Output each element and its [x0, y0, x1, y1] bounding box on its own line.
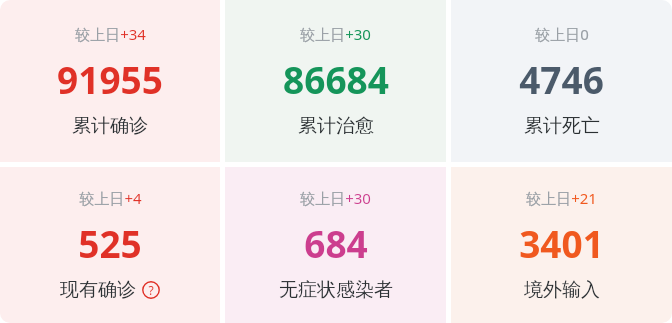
staticText: 较上日+4: [79, 188, 142, 208]
staticText: 86684: [283, 54, 389, 104]
staticText: 现有确诊: [60, 278, 136, 302]
staticText: 较上日+21: [526, 188, 597, 208]
staticText: 累计治愈: [298, 114, 374, 138]
button[interactable]: 较上日+30: [225, 167, 446, 323]
staticText: 较上日+30: [300, 24, 371, 44]
staticText: 3401: [519, 218, 604, 268]
staticText: 较上日0: [535, 24, 589, 44]
staticText: 无症状感染者: [279, 278, 393, 302]
button[interactable]: 较上日+4: [0, 167, 220, 323]
button[interactable]: 较上日+21: [451, 167, 672, 323]
staticText: 累计确诊: [72, 114, 148, 138]
staticText: 4746: [519, 54, 604, 104]
staticText: 较上日+34: [75, 24, 146, 44]
staticText: ?: [148, 282, 154, 298]
staticText: 684: [304, 218, 368, 268]
staticText: 91955: [57, 54, 163, 104]
button[interactable]: Help, what is current confirmed: [142, 281, 160, 299]
button[interactable]: 较上日0: [451, 0, 672, 162]
staticText: 525: [78, 218, 142, 268]
button[interactable]: 较上日+34: [0, 0, 220, 162]
staticText: 累计死亡: [524, 114, 600, 138]
button[interactable]: 较上日+30: [225, 0, 446, 162]
staticText: 较上日+30: [300, 188, 371, 208]
staticText: 境外输入: [524, 278, 600, 302]
